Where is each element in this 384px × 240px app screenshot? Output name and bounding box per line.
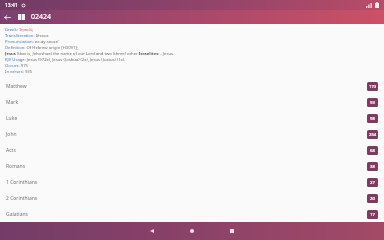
- staticText: KJV Usage: Jesus (972x), Jesus (Joshua) …: [5, 57, 379, 63]
- staticText: John: [6, 131, 17, 138]
- button[interactable]: Luke: [0, 110, 384, 126]
- button[interactable]: Galatians: [0, 206, 384, 222]
- staticText: 93: [370, 100, 375, 106]
- button[interactable]: 1 Corinthians: [0, 174, 384, 190]
- staticText: 1 Corinthians: [6, 179, 38, 186]
- button[interactable]: Matthew: [0, 78, 384, 94]
- staticText: In verses: 935: [5, 69, 379, 75]
- staticText: Definition: Of Hebrew origin [H3091];: [5, 45, 379, 51]
- button[interactable]: Mark: [0, 94, 384, 110]
- button[interactable]: Back: [0, 10, 14, 24]
- staticText: Galatians: [6, 211, 28, 218]
- button[interactable]: Book: [14, 10, 28, 24]
- button[interactable]: John: [0, 126, 384, 142]
- staticText: 17: [370, 212, 375, 218]
- button[interactable]: Acts: [0, 142, 384, 158]
- button[interactable]: Home: [172, 222, 212, 240]
- staticText: Romans: [6, 163, 26, 170]
- staticText: Occurs: 975: [5, 63, 379, 69]
- staticText: 20: [370, 196, 375, 202]
- staticText: 2 Corinthians: [6, 195, 38, 202]
- staticText: 13:41: [5, 2, 18, 9]
- staticText: 38: [370, 164, 375, 170]
- staticText: 254: [369, 132, 377, 138]
- staticText: Greek: Ἰησοῦς: [5, 27, 379, 33]
- button[interactable]: Recents: [212, 222, 252, 240]
- button[interactable]: 2 Corinthians: [0, 190, 384, 206]
- staticText: Mark: [6, 99, 19, 106]
- staticText: 68: [370, 148, 375, 154]
- button[interactable]: Romans: [0, 158, 384, 174]
- button[interactable]: Back: [132, 222, 172, 240]
- staticText: 173: [369, 84, 377, 90]
- staticText: Matthew: [6, 83, 27, 90]
- staticText: Jesus (that is, Jehoshua) the name of ou…: [5, 51, 379, 57]
- staticText: Acts: [6, 147, 16, 154]
- staticText: 02424: [31, 12, 52, 22]
- staticText: 27: [370, 180, 375, 186]
- staticText: Pronunciation: ee-ay-sooce': [5, 39, 379, 45]
- staticText: Luke: [6, 115, 18, 122]
- staticText: Transliteration: Iēsous: [5, 33, 379, 39]
- staticText: 98: [370, 116, 375, 122]
